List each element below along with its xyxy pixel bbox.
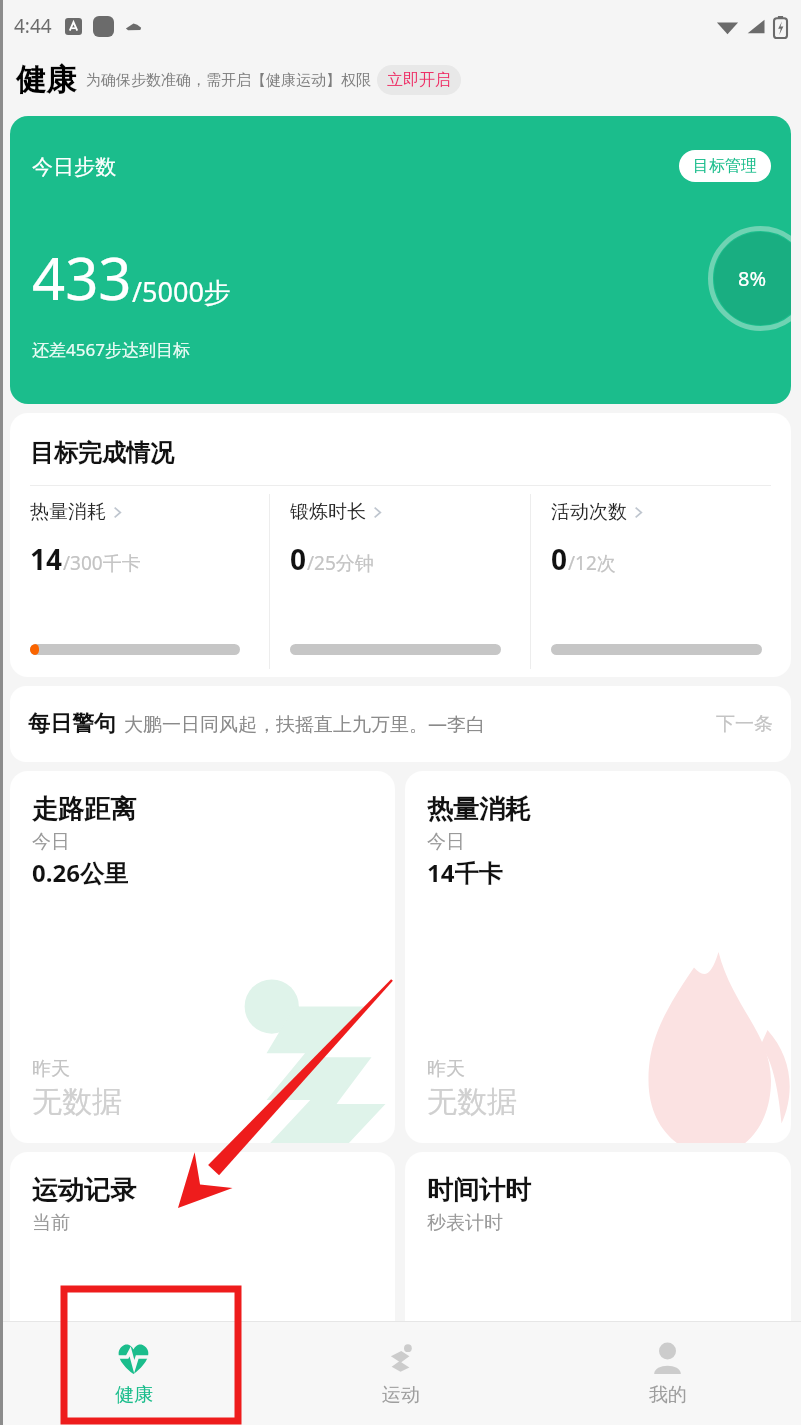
staticText: 目标完成情况 [30,438,174,468]
staticText: 昨天 [32,1057,70,1081]
button[interactable]: 运动记录 [10,1152,395,1352]
staticText: 今日 [427,830,465,854]
staticText: 活动次数 [551,500,627,524]
button[interactable]: 热量消耗 [405,771,791,1143]
button[interactable]: 活动次数 [531,486,791,677]
staticText: 8% [738,265,767,292]
staticText: /25分钟 [307,550,374,576]
button[interactable]: 走路距离 [10,771,395,1143]
staticText: 0 [551,540,568,578]
staticText: 0.26公里 [32,856,128,889]
staticText: 健康 [115,1383,153,1407]
button[interactable]: 热量消耗 [10,486,269,677]
staticText: 热量消耗 [427,793,531,826]
staticText: 大鹏一日同风起，扶摇直上九万里。—李白 [124,711,486,737]
button[interactable]: 立即开启 [377,65,461,95]
staticText: 4:44 [14,13,52,39]
staticText: 热量消耗 [30,500,106,524]
button[interactable]: 健康 [0,1322,267,1425]
button[interactable]: 下一条 [716,712,773,736]
staticText: 锻炼时长 [290,500,366,524]
staticText: 433 [32,238,132,317]
button[interactable]: 今日步数 [10,116,791,404]
staticText: 运动 [382,1383,420,1407]
staticText: 运动记录 [32,1174,136,1207]
staticText: /12次 [568,550,616,576]
staticText: 0 [290,540,307,578]
staticText: 目标管理 [693,156,757,176]
button[interactable]: 运动 [267,1322,534,1425]
button[interactable]: 锻炼时长 [270,486,530,677]
staticText: 走路距离 [32,793,136,826]
staticText: 无数据 [427,1083,517,1121]
staticText: 今日 [32,830,70,854]
button[interactable]: 目标管理 [679,150,771,182]
staticText: 我的 [649,1383,687,1407]
staticText: 每日警句 [28,710,116,738]
staticText: 无数据 [32,1083,122,1121]
staticText: 昨天 [427,1057,465,1081]
staticText: 健康 [16,61,76,99]
button[interactable]: 我的 [534,1322,801,1425]
staticText: 时间计时 [427,1174,531,1207]
staticText: /5000步 [132,273,231,310]
staticText: 为确保步数准确，需开启【健康运动】权限 [86,71,371,90]
staticText: 14 [30,540,63,578]
staticText: 立即开启 [387,70,451,90]
staticText: 还差4567步达到目标 [32,338,190,361]
staticText: 14千卡 [427,856,503,889]
button[interactable]: 时间计时 [405,1152,791,1352]
button[interactable]: 每日警句 [10,686,791,762]
staticText: 当前 [32,1211,70,1235]
staticText: 今日步数 [32,154,116,180]
staticText: /300千卡 [63,550,141,576]
staticText: 秒表计时 [427,1211,503,1235]
